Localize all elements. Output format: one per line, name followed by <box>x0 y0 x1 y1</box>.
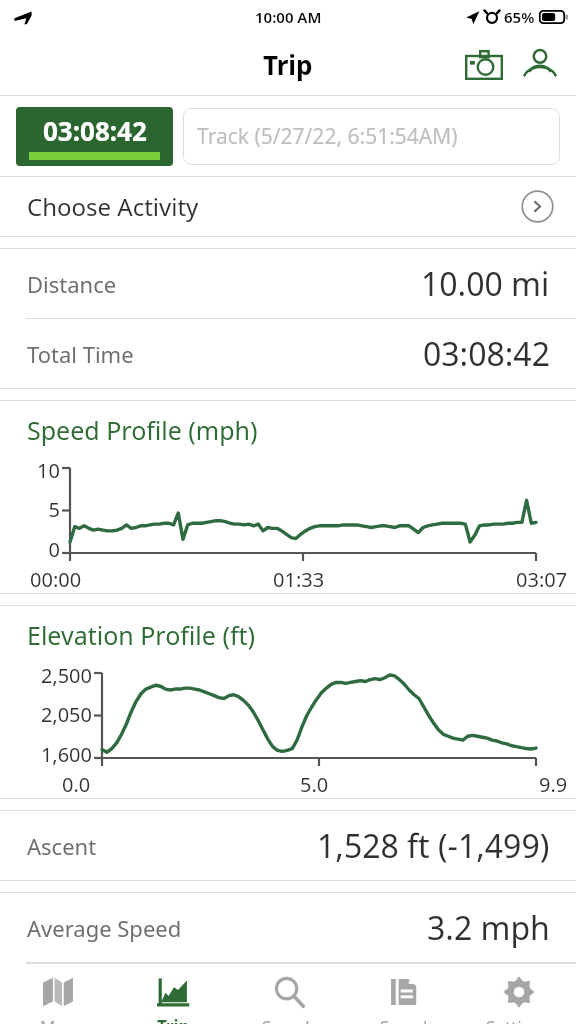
staticText: 2,500 <box>40 662 92 689</box>
button[interactable]: Choose Activity <box>0 177 576 236</box>
staticText: 10.00 mi <box>421 262 550 306</box>
button[interactable]: Saved <box>346 964 461 1024</box>
staticText: 3.2 mph <box>427 906 550 950</box>
staticText: 5 <box>48 496 60 523</box>
button[interactable]: Speed Profile (mph) <box>0 401 576 593</box>
button[interactable]: 03:08:42 <box>16 107 173 166</box>
staticText: Distance <box>27 269 117 299</box>
button[interactable]: Settings <box>461 964 576 1024</box>
staticText: Trip <box>263 47 313 82</box>
staticText: Trip <box>157 1015 190 1024</box>
staticText: Choose Activity <box>27 190 199 223</box>
staticText: Track (5/27/22, 6:51:54AM) <box>197 122 458 151</box>
staticText: Settings <box>486 1015 551 1024</box>
staticText: Search <box>262 1015 316 1024</box>
staticText: Map <box>40 1015 76 1024</box>
staticText: 0.0 <box>62 771 91 798</box>
button[interactable]: Trip <box>116 964 231 1024</box>
staticText: 03:07 <box>516 566 568 593</box>
staticText: 10 <box>37 457 60 484</box>
button[interactable]: Total Time <box>0 319 576 388</box>
button[interactable]: Search <box>231 964 346 1024</box>
staticText: 9.9 <box>539 771 568 798</box>
staticText: Speed Profile (mph) <box>27 413 258 447</box>
button[interactable]: Distance <box>0 249 576 318</box>
button[interactable]: Take photo <box>456 37 512 93</box>
staticText: 03:08:42 <box>43 113 147 148</box>
staticText: Total Time <box>27 339 134 369</box>
staticText: 0 <box>48 536 60 563</box>
staticText: Elevation Profile (ft) <box>27 618 256 652</box>
staticText: 2,050 <box>40 701 92 728</box>
staticText: 10:00 AM <box>255 7 322 27</box>
staticText: 00:00 <box>30 566 82 593</box>
staticText: Average Speed <box>27 913 182 943</box>
staticText: 65% <box>504 7 535 27</box>
staticText: 1,528 ft (-1,499) <box>317 824 550 868</box>
button[interactable]: Map <box>0 964 116 1024</box>
staticText: 01:33 <box>273 566 325 593</box>
staticText: Saved <box>380 1015 428 1024</box>
staticText: Ascent <box>27 831 97 861</box>
staticText: 1,600 <box>40 741 92 768</box>
button[interactable]: Add waypoint <box>512 37 568 93</box>
button[interactable]: Ascent <box>0 811 576 880</box>
staticText: 5.0 <box>300 771 329 798</box>
button[interactable]: Track (5/27/22, 6:51:54AM) <box>183 108 560 165</box>
button[interactable]: Average Speed <box>0 893 576 962</box>
staticText: 03:08:42 <box>423 332 550 376</box>
button[interactable]: Elevation Profile (ft) <box>0 606 576 798</box>
